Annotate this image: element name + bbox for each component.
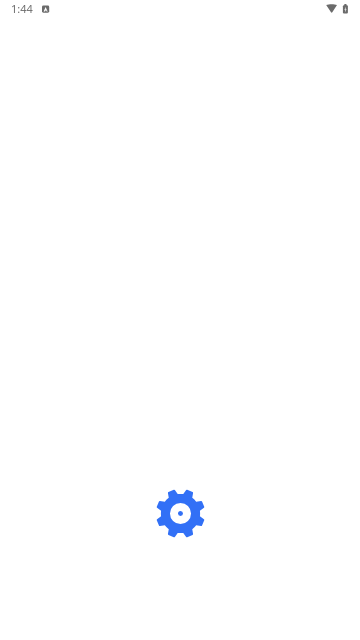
button[interactable]: Settings [156, 489, 205, 538]
staticText: 1:44 [11, 1, 33, 16]
